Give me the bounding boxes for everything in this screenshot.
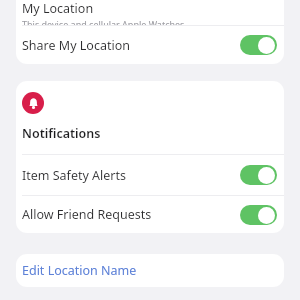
button[interactable]: Edit Location Name — [16, 254, 284, 287]
button[interactable]: Allow Friend Requests — [16, 196, 284, 233]
staticText: Notifications — [22, 125, 101, 142]
staticText: Allow Friend Requests — [22, 206, 152, 223]
staticText: Item Safety Alerts — [22, 167, 127, 184]
button[interactable]: Item Safety Alerts — [16, 155, 284, 195]
staticText: My Location — [22, 0, 94, 17]
button[interactable]: Toggle on — [240, 165, 277, 185]
staticText: Share My Location — [22, 37, 130, 54]
button[interactable]: Toggle on — [240, 35, 277, 55]
staticText: Edit Location Name — [22, 262, 137, 279]
button[interactable]: My Location — [16, 0, 284, 25]
staticText: This device and cellular Apple Watches — [22, 18, 185, 25]
button[interactable]: Toggle on — [240, 205, 277, 225]
button[interactable]: Share My Location — [16, 26, 284, 64]
